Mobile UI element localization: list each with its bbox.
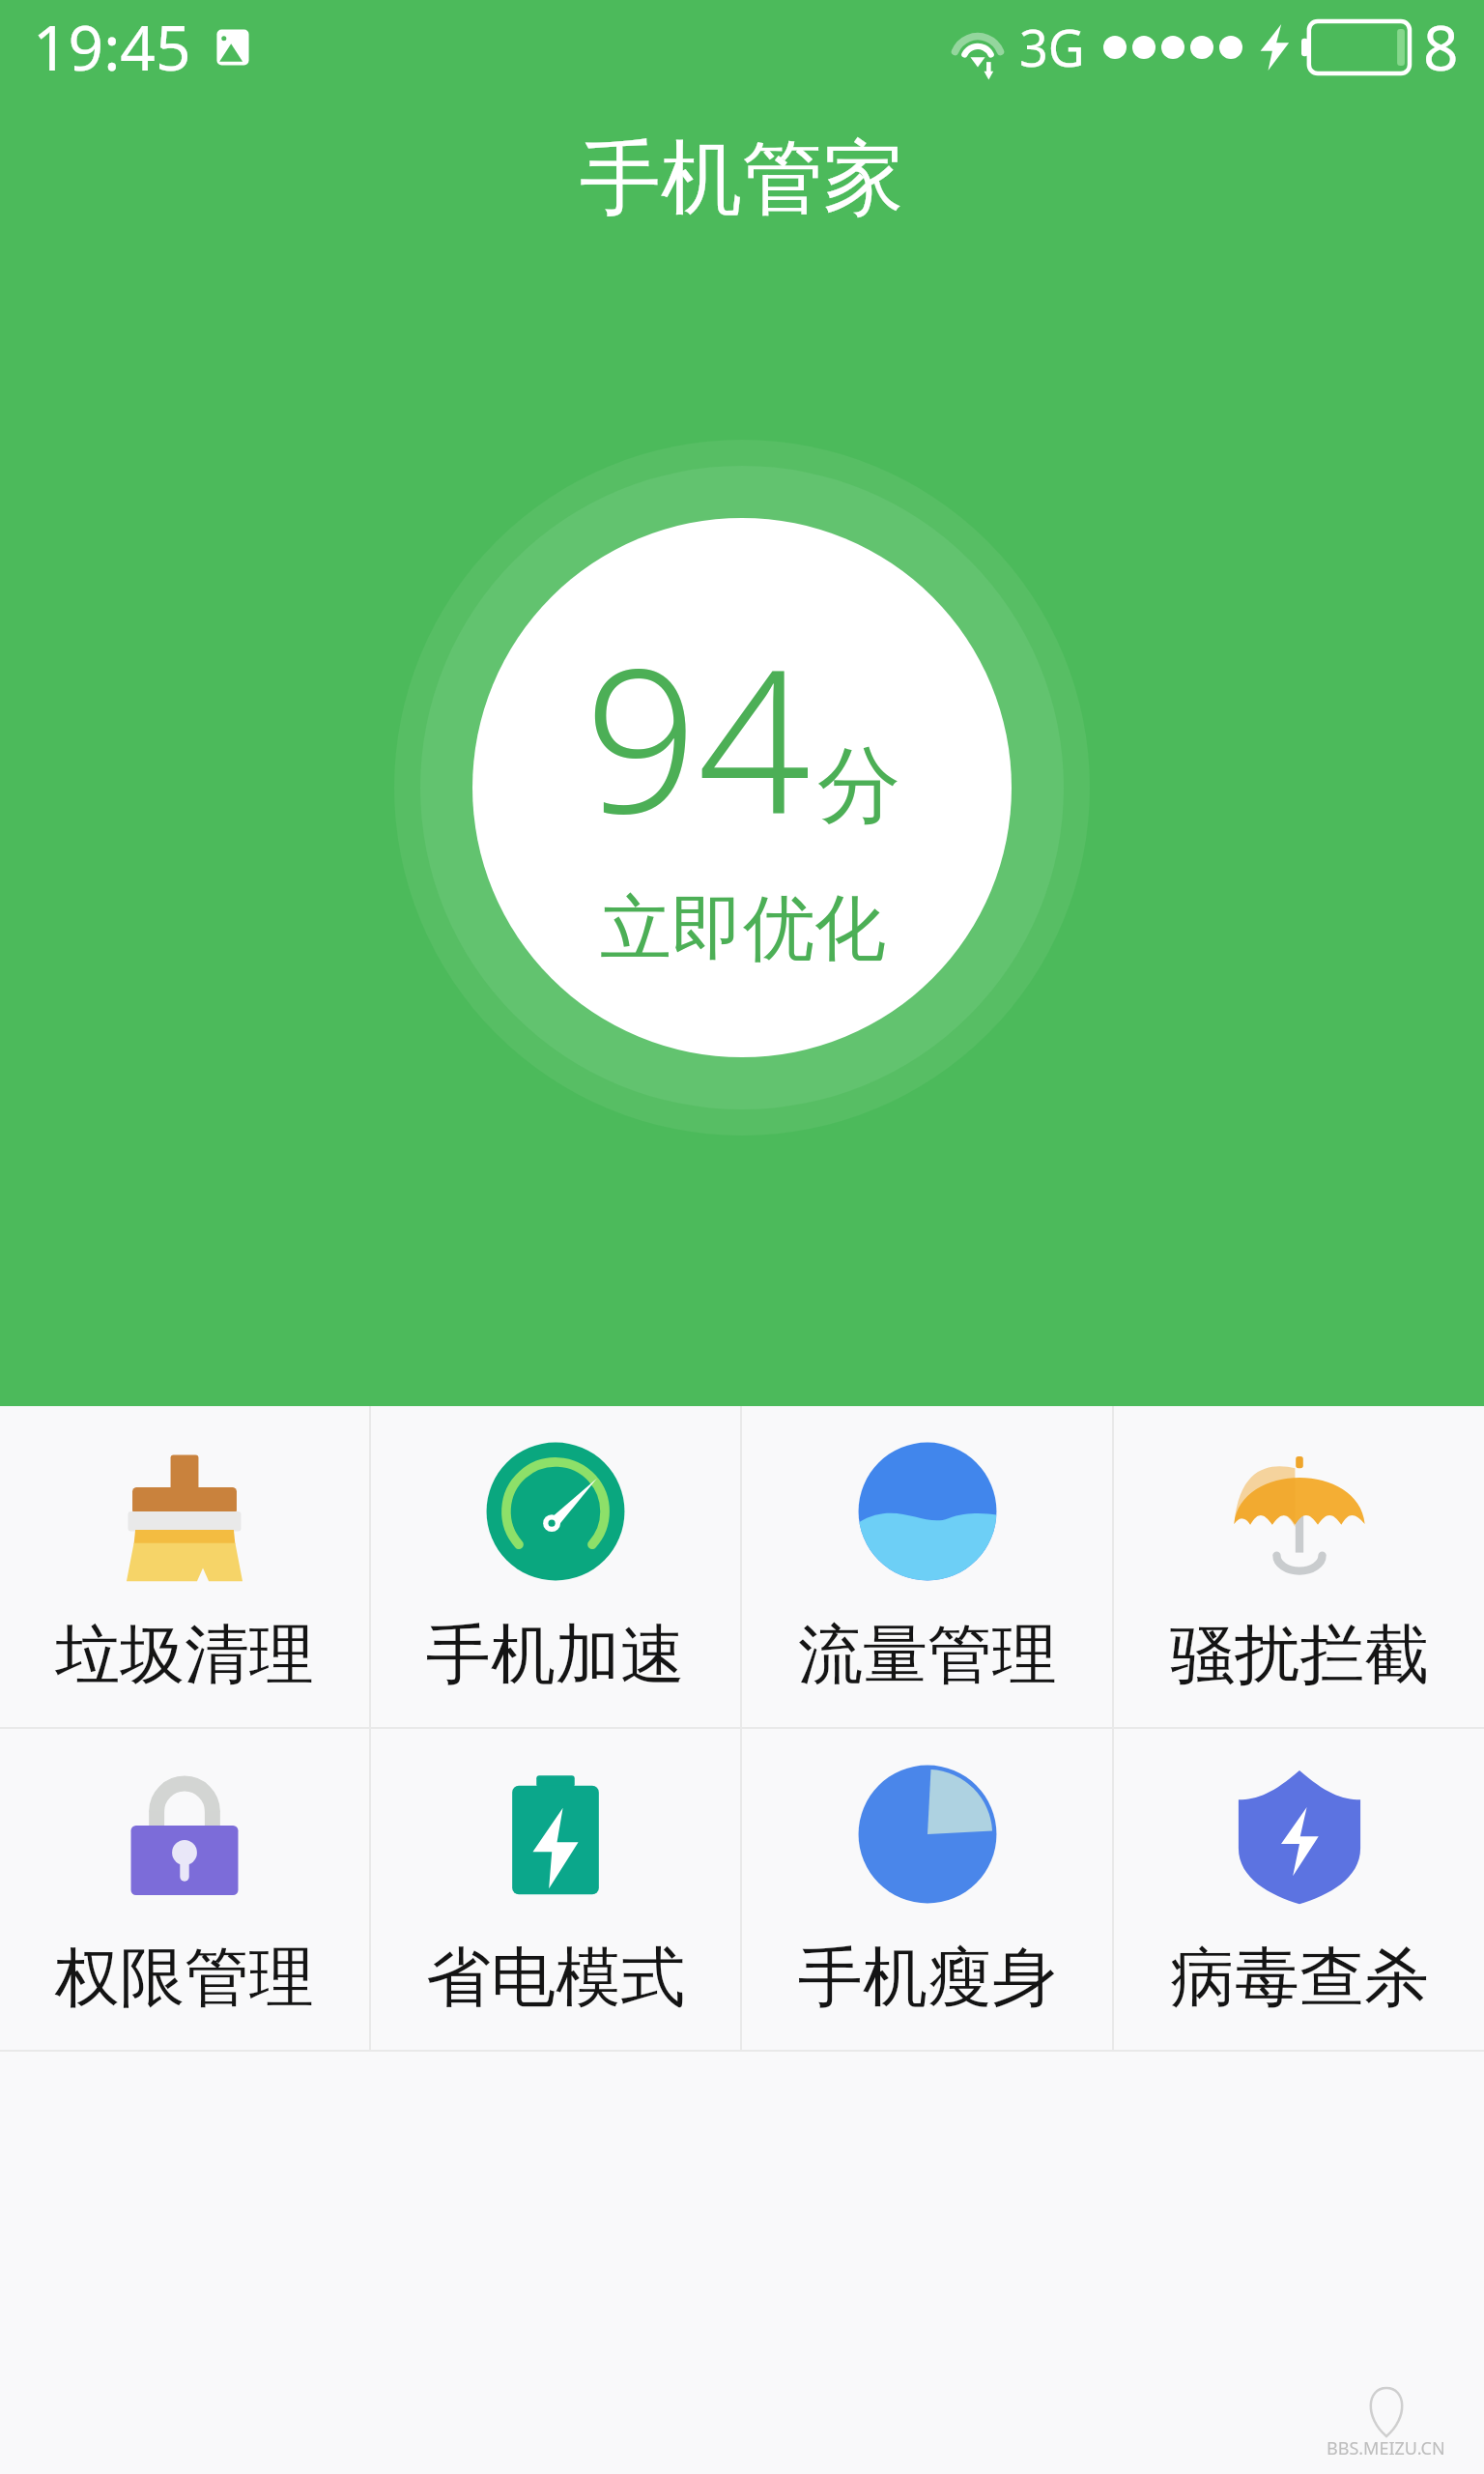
button[interactable]: 垃圾清理 bbox=[0, 1406, 369, 1727]
staticText: 分 bbox=[817, 734, 900, 838]
other: 权限管理 bbox=[111, 1761, 258, 1908]
button[interactable]: 省电模式 bbox=[371, 1729, 740, 2050]
other: 手机加速 bbox=[482, 1438, 629, 1585]
other: 流量管理 bbox=[854, 1438, 1001, 1585]
button[interactable]: 权限管理 bbox=[0, 1729, 369, 2050]
other: 省电模式 bbox=[482, 1761, 629, 1908]
staticText: 权限管理 bbox=[55, 1937, 314, 2018]
button[interactable]: 手机加速 bbox=[371, 1406, 740, 1727]
staticText: 手机管家 bbox=[580, 128, 904, 230]
button[interactable]: 病毒查杀 bbox=[1114, 1729, 1484, 2050]
staticText: 8 bbox=[1423, 5, 1459, 89]
staticText: 94 bbox=[585, 601, 812, 871]
button[interactable]: 手机瘦身 bbox=[742, 1729, 1112, 2050]
staticText: 立即优化 bbox=[600, 884, 886, 974]
staticText: 病毒查杀 bbox=[1170, 1937, 1429, 2018]
staticText: 手机加速 bbox=[426, 1614, 685, 1695]
staticText: 省电模式 bbox=[426, 1937, 685, 2018]
staticText: 流量管理 bbox=[798, 1614, 1057, 1695]
other: 病毒查杀 bbox=[1226, 1761, 1373, 1908]
other: 垃圾清理 bbox=[111, 1438, 258, 1585]
button[interactable]: 94 bbox=[394, 440, 1090, 1136]
button[interactable]: 骚扰拦截 bbox=[1114, 1406, 1484, 1727]
other: 骚扰拦截 bbox=[1226, 1438, 1373, 1585]
button[interactable]: 流量管理 bbox=[742, 1406, 1112, 1727]
staticText: 3G bbox=[1019, 13, 1085, 81]
staticText: 垃圾清理 bbox=[55, 1614, 314, 1695]
other: 手机瘦身 bbox=[854, 1761, 1001, 1908]
staticText: BBS.MEIZU.CN bbox=[1327, 2436, 1445, 2460]
staticText: 骚扰拦截 bbox=[1170, 1614, 1429, 1695]
staticText: 手机瘦身 bbox=[798, 1937, 1057, 2018]
staticText: 19:45 bbox=[33, 5, 191, 89]
